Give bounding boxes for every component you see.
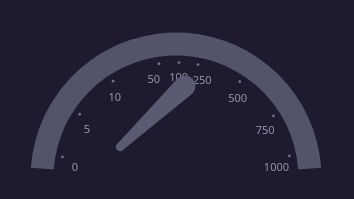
- button[interactable]: Speed test gauge: [0, 0, 354, 199]
